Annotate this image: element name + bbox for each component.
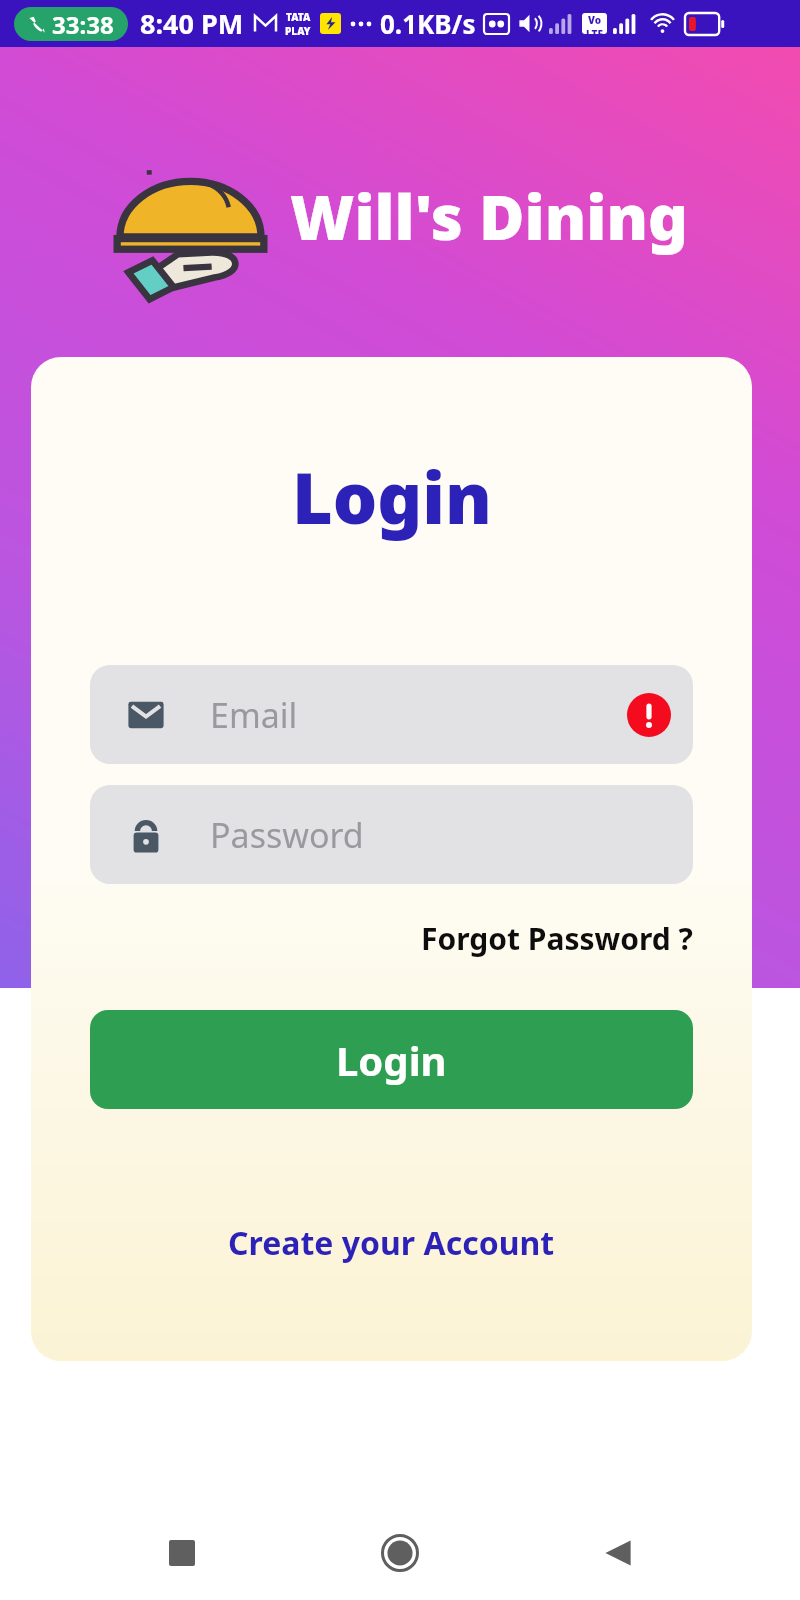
staticText: 8:40 PM xyxy=(140,5,244,42)
staticText: Login xyxy=(292,449,492,544)
staticText: Vo xyxy=(588,13,602,27)
staticText: Email xyxy=(210,692,298,738)
staticText: PLAY xyxy=(285,24,311,38)
staticText: Create your Account xyxy=(228,1221,555,1265)
button[interactable]: Login xyxy=(90,1010,693,1109)
button[interactable]: Password input field xyxy=(90,785,693,884)
staticText: LTE xyxy=(586,27,604,34)
staticText: 0.1KB/s xyxy=(380,6,476,41)
button[interactable]: Recent apps xyxy=(146,1517,218,1589)
staticText: TATA xyxy=(286,10,311,24)
button[interactable]: Create your Account xyxy=(31,1221,752,1265)
staticText: Login xyxy=(336,1033,447,1087)
button[interactable]: Back xyxy=(582,1517,654,1589)
button[interactable]: Forgot Password ? xyxy=(90,918,693,959)
button[interactable]: Email input field xyxy=(90,665,693,764)
staticText: Password xyxy=(210,812,364,858)
staticText: Forgot Password ? xyxy=(421,918,693,959)
staticText: Will's Dining xyxy=(290,174,688,258)
staticText: 33:38 xyxy=(52,8,114,41)
button[interactable]: Home xyxy=(364,1517,436,1589)
